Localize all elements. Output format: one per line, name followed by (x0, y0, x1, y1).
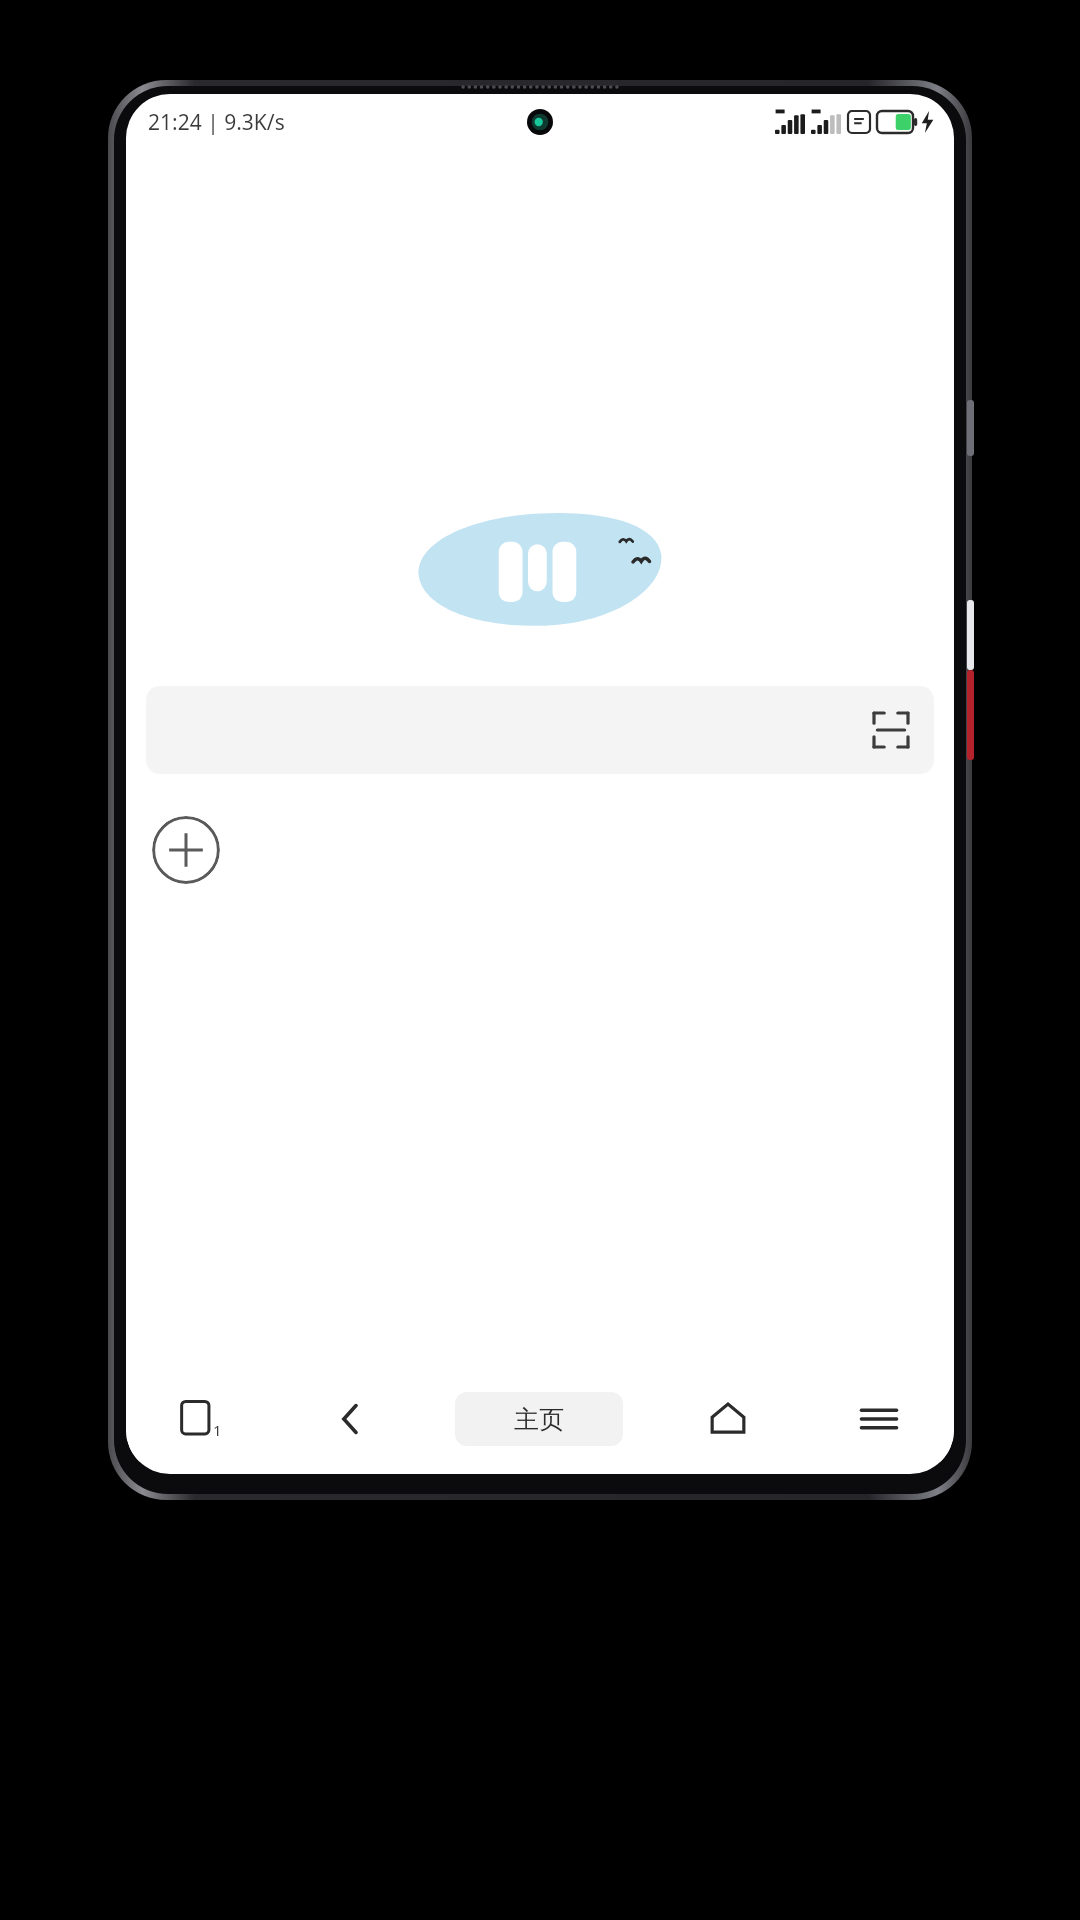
button[interactable]: Home (652, 1376, 803, 1462)
button[interactable]: Menu (803, 1376, 954, 1462)
button[interactable]: Scan QR code (146, 686, 934, 774)
button[interactable]: 主页 (455, 1392, 623, 1446)
button[interactable]: Scan QR code (870, 709, 912, 751)
button[interactable]: Add new tab (152, 816, 220, 884)
button[interactable]: Tabs (126, 1376, 276, 1462)
staticText: 主页 (514, 1404, 564, 1435)
staticText: 21:24 | 9.3K/s (148, 108, 285, 137)
button[interactable]: Back (276, 1376, 426, 1462)
other: Illustration (415, 510, 665, 628)
staticText: 1 (213, 1420, 222, 1440)
